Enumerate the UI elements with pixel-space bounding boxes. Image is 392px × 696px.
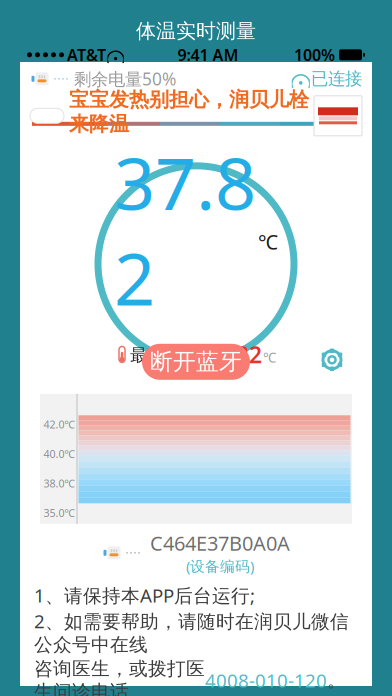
button[interactable]: 4008-010-120 [205,668,327,693]
staticText: 2、如需要帮助，请随时在润贝儿微信公众号中在线 [34,609,349,656]
staticText: 最高体温: [130,343,203,366]
staticText: 40.0℃ [43,447,75,461]
staticText: 。 [327,669,346,692]
staticText: 9:41 AM [178,44,239,65]
staticText: C464E37B0A0A [150,530,290,556]
button[interactable]: 设置 [315,343,349,377]
staticText: 100% [294,44,335,65]
staticText: ℃ [263,349,276,366]
button[interactable]: 断开蓝牙 [142,344,250,380]
staticText: 4008-010-120 [205,668,327,693]
staticText: 38.82 [204,339,262,369]
staticText: AT&T [67,44,106,65]
staticText: 37.82 [114,134,256,325]
staticText: 35.0℃ [43,506,75,520]
staticText: 剩余电量50% [74,67,176,90]
staticText: 宝宝发热别担心，润贝儿栓来降温 [69,87,309,136]
button[interactable]: 广告：宝宝发热别担心，润贝儿栓来降温 [20,93,372,139]
staticText: ℃ [258,228,278,255]
staticText: 42.0℃ [43,417,75,431]
staticText: 体温实时测量 [136,19,256,43]
staticText: 已连接 [311,68,362,89]
staticText: 38.0℃ [43,476,75,490]
staticText: 断开蓝牙 [150,348,242,376]
staticText: 1、请保持本APP后台运行; [34,583,255,608]
staticText: (设备编码) [186,556,254,576]
staticText: 咨询医生，或拨打医生问诊电话 [34,657,205,696]
